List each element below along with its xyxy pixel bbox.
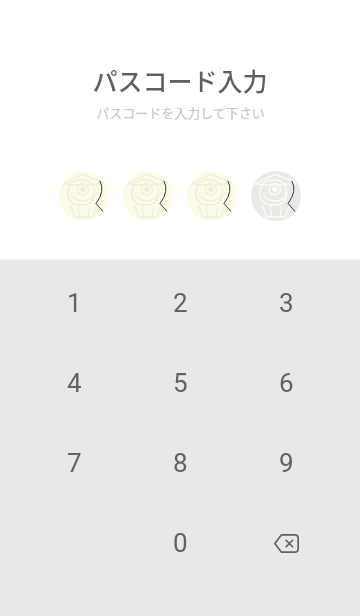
button[interactable]: 2 [127, 263, 233, 343]
button[interactable]: 0 [127, 503, 233, 583]
staticText: 2 [173, 288, 188, 318]
staticText: 3 [279, 288, 294, 318]
button[interactable]: 4 [21, 343, 127, 423]
staticText: 0 [173, 528, 188, 558]
staticText: 1 [67, 288, 82, 318]
button[interactable]: 5 [127, 343, 233, 423]
staticText: 7 [67, 448, 82, 478]
staticText: パスコードを入力して下さい [96, 103, 265, 122]
staticText: 8 [173, 448, 188, 478]
staticText: パスコード入力 [92, 62, 268, 98]
staticText: 6 [279, 368, 294, 398]
button[interactable]: 3 [233, 263, 339, 343]
button[interactable]: 6 [233, 343, 339, 423]
button[interactable]: Delete [233, 503, 339, 583]
button[interactable]: 1 [21, 263, 127, 343]
button[interactable]: 7 [21, 423, 127, 503]
button[interactable]: 9 [233, 423, 339, 503]
staticText: 5 [173, 368, 188, 398]
staticText: 9 [279, 448, 294, 478]
button[interactable]: 8 [127, 423, 233, 503]
staticText: 4 [67, 368, 82, 398]
other: Delete [274, 534, 299, 553]
